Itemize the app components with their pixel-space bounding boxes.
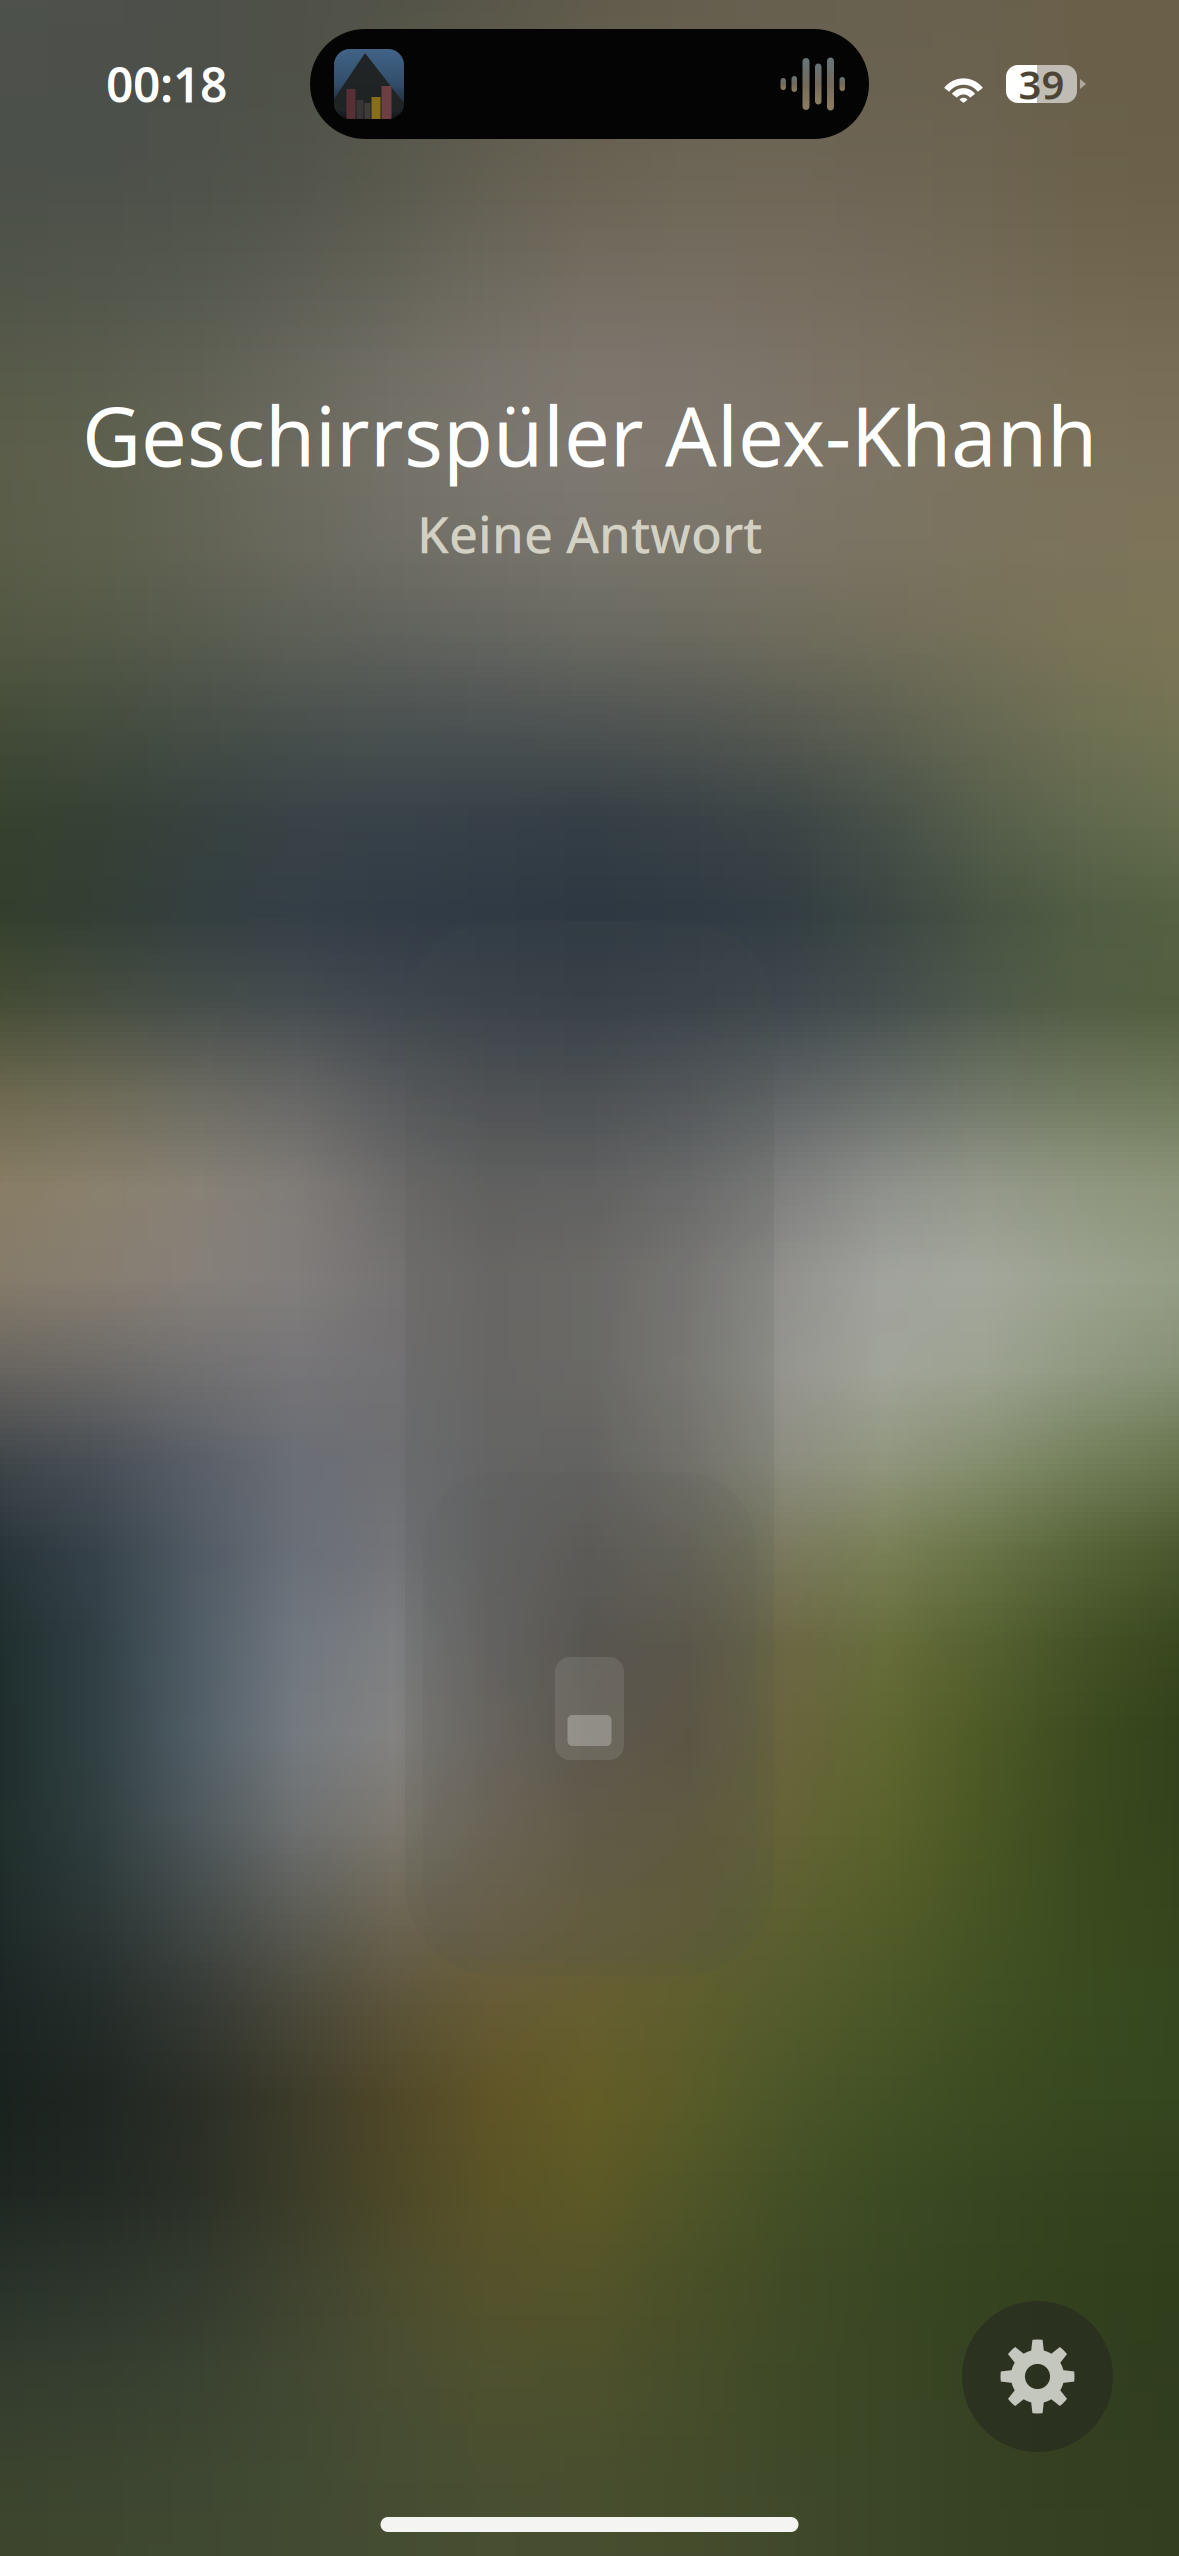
staticText: Geschirrspüler Alex-Khanh xyxy=(82,381,1097,489)
staticText: 00:18 xyxy=(106,52,227,116)
staticText: Keine Antwort xyxy=(417,500,762,567)
button[interactable]: Einstellungen xyxy=(962,2301,1113,2452)
staticText: 39 xyxy=(1018,57,1064,110)
